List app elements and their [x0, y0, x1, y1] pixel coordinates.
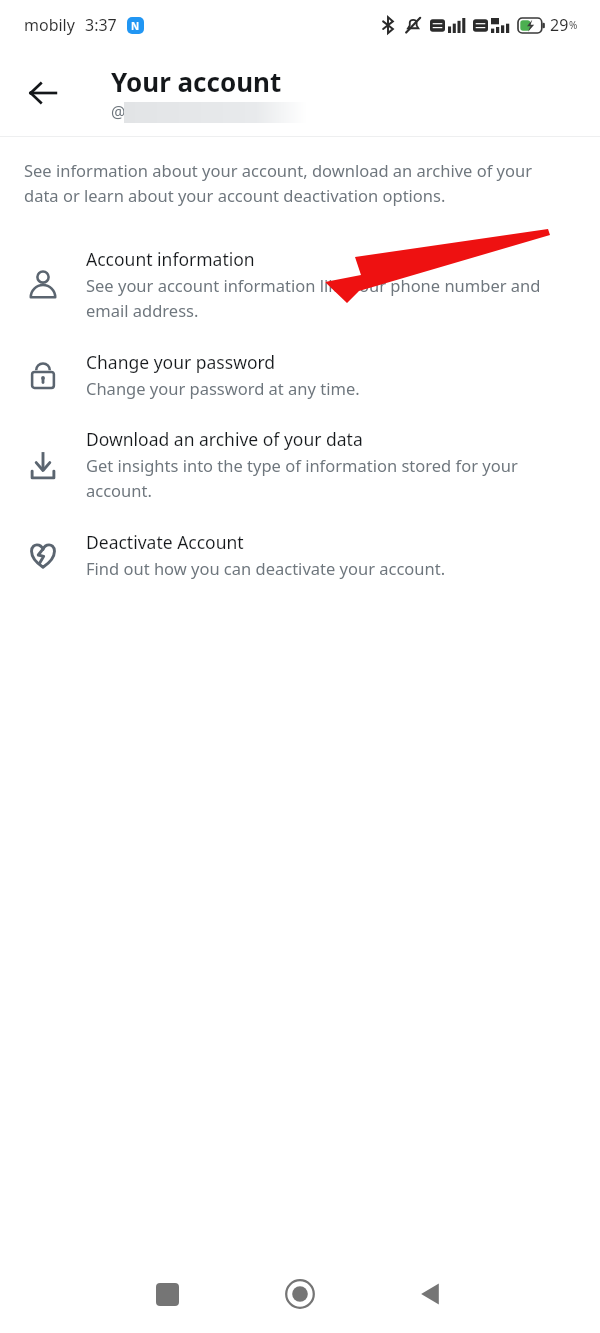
staticText: mobily — [24, 14, 75, 36]
staticText: Your account — [111, 64, 282, 99]
button[interactable]: Change your password — [0, 336, 600, 413]
staticText: Account information — [86, 247, 255, 271]
staticText: Change your password — [86, 350, 276, 374]
button[interactable]: Deactivate Account — [0, 516, 600, 593]
staticText: Download an archive of your data — [86, 427, 363, 451]
staticText: Change your password at any time. — [86, 377, 360, 399]
staticText: 3:37 — [85, 14, 117, 36]
button[interactable]: Back — [400, 1264, 460, 1324]
staticText: See your account information like your p… — [86, 274, 570, 322]
staticText: Deactivate Account — [86, 530, 244, 554]
staticText: 29 — [550, 14, 569, 36]
staticText: % — [569, 18, 578, 32]
staticText: Get insights into the type of informatio… — [86, 454, 570, 502]
staticText: @ — [111, 101, 126, 123]
staticText: See information about your account, down… — [24, 159, 570, 207]
button[interactable]: Home — [270, 1264, 330, 1324]
button[interactable]: Back — [13, 63, 73, 123]
button[interactable]: Recent apps — [137, 1264, 197, 1324]
staticText: N — [131, 19, 140, 33]
staticText: Find out how you can deactivate your acc… — [86, 557, 446, 579]
button[interactable]: Account information — [0, 233, 600, 336]
button[interactable]: Download an archive of your data — [0, 413, 600, 516]
